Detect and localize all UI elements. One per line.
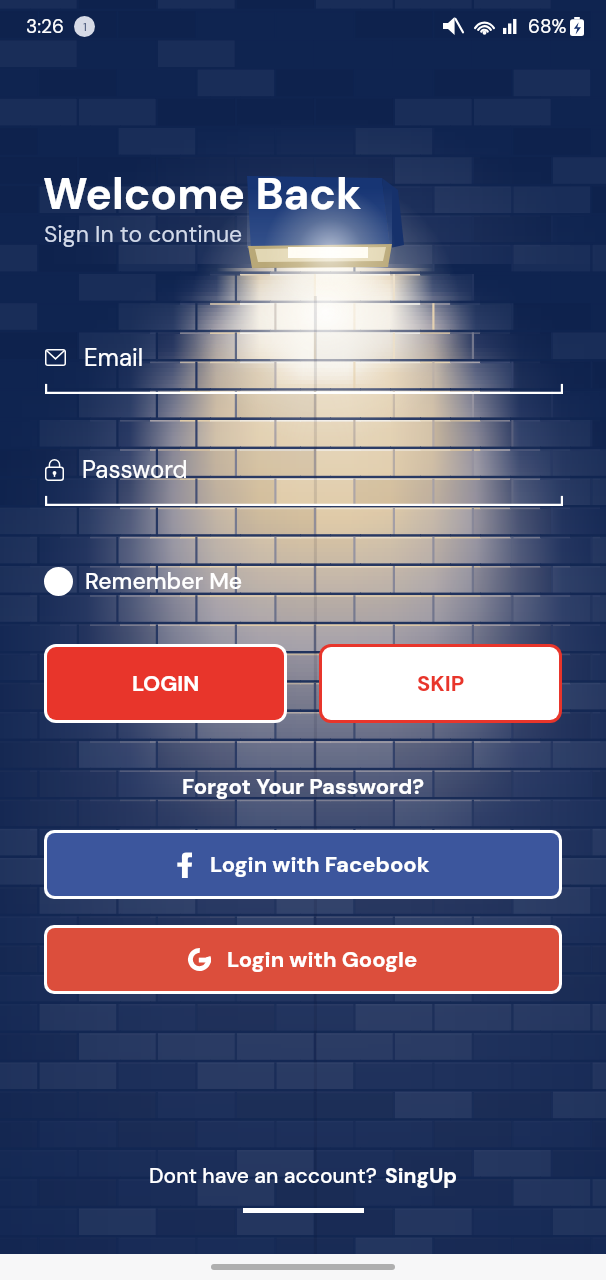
staticText: Dont have an account? (149, 1162, 377, 1189)
button[interactable]: Login with Facebook (47, 833, 559, 896)
button[interactable]: Forgot Your Password? (182, 772, 425, 801)
button[interactable]: LOGIN (47, 647, 284, 720)
button[interactable]: Password (45, 454, 563, 506)
staticText: SKIP (417, 669, 465, 698)
staticText: SingUp (385, 1162, 458, 1189)
staticText: Sign In to continue (44, 219, 243, 249)
staticText: Login with Google (227, 945, 418, 974)
staticText: Welcome Back (43, 165, 362, 222)
button[interactable]: SKIP (322, 647, 559, 720)
staticText: 1 (83, 19, 87, 35)
staticText: 68% (528, 14, 567, 39)
staticText: Password (82, 454, 188, 485)
staticText: Login with Facebook (210, 850, 430, 879)
button[interactable]: Email (45, 342, 563, 394)
staticText: 3:26 (26, 14, 64, 39)
staticText: Remember Me (85, 566, 243, 596)
button[interactable]: Dont have an account? (0, 1162, 606, 1189)
button[interactable]: Login with Google (47, 928, 559, 991)
staticText: Email (84, 342, 144, 373)
button[interactable]: Remember Me (44, 566, 243, 596)
staticText: LOGIN (132, 669, 200, 698)
